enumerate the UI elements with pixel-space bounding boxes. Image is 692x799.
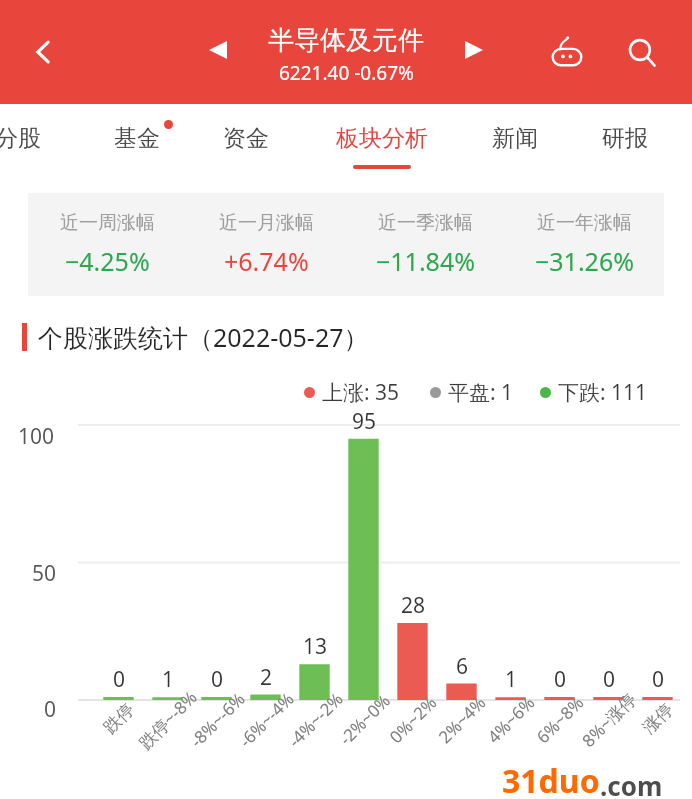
staticText: -4%~-2% (283, 687, 348, 752)
staticText: 半导体及元件 (268, 24, 424, 57)
staticText: −31.26% (535, 244, 634, 278)
button[interactable]: 板块分析 (324, 104, 440, 174)
staticText: 95 (347, 407, 381, 436)
staticText: 近一年涨幅 (537, 211, 632, 235)
button[interactable]: Back (22, 30, 66, 74)
staticText: -2%~0% (334, 689, 395, 750)
button[interactable]: 分股 (0, 104, 52, 174)
button[interactable]: 资金 (212, 104, 280, 174)
button[interactable]: 上涨: 35 (304, 378, 400, 407)
staticText: .com (600, 768, 663, 799)
staticText: 板块分析 (336, 124, 428, 153)
staticText: 分股 (0, 124, 41, 153)
staticText: 4%~6% (482, 691, 540, 748)
staticText: 100 (18, 422, 55, 451)
staticText: 0 (44, 695, 57, 724)
staticText: +6.74% (224, 244, 309, 278)
staticText: 31duo (502, 759, 600, 799)
staticText: 新闻 (492, 124, 538, 153)
staticText: 个股涨跌统计（2022-05-27） (38, 320, 369, 354)
staticText: 基金 (114, 124, 160, 153)
button[interactable]: 新闻 (481, 104, 549, 174)
staticText: 2%~4% (433, 691, 491, 748)
staticText: 1 (151, 665, 185, 694)
staticText: 0 (592, 665, 626, 694)
staticText: 6%~8% (531, 691, 589, 748)
staticText: 近一月涨幅 (219, 211, 314, 235)
staticText: 0 (641, 665, 675, 694)
staticText: 近一周涨幅 (60, 211, 155, 235)
button[interactable]: Search (618, 29, 666, 77)
staticText: 下跌: 111 (558, 378, 648, 407)
staticText: 近一季涨幅 (378, 211, 473, 235)
staticText: 0 (102, 665, 136, 694)
staticText: -8%~-6% (185, 687, 250, 752)
staticText: -6%~-4% (234, 687, 299, 752)
staticText: 上涨: 35 (322, 378, 400, 407)
staticText: 研报 (602, 124, 648, 153)
staticText: 0 (543, 665, 577, 694)
staticText: 跌停~-8% (134, 685, 202, 754)
staticText: 50 (32, 559, 57, 588)
button[interactable]: Previous sector (198, 30, 238, 70)
staticText: 8%~涨停 (577, 687, 641, 752)
staticText: 6221.40 -0.67% (279, 60, 414, 86)
staticText: 0%~2% (384, 691, 442, 748)
staticText: 平盘: 1 (448, 378, 514, 407)
button[interactable]: AI assistant (543, 29, 591, 77)
button[interactable]: 基金 (103, 104, 171, 174)
staticText: 涨停 (639, 699, 677, 738)
staticText: 1 (494, 665, 528, 694)
button[interactable]: Next sector (454, 30, 494, 70)
staticText: 0 (200, 665, 234, 694)
staticText: 跌停 (100, 699, 138, 738)
staticText: 28 (396, 591, 430, 620)
staticText: 资金 (223, 124, 269, 153)
button[interactable]: 下跌: 111 (540, 378, 648, 407)
staticText: 13 (298, 632, 332, 661)
button[interactable]: 平盘: 1 (430, 378, 514, 407)
staticText: −4.25% (65, 244, 150, 278)
staticText: 6 (445, 652, 479, 681)
button[interactable]: 研报 (591, 104, 659, 174)
staticText: −11.84% (376, 244, 475, 278)
staticText: 2 (249, 663, 283, 692)
